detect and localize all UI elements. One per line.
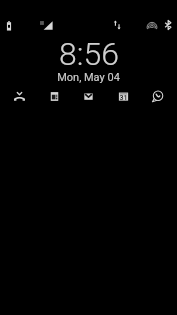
button[interactable]: WhatsApp — [152, 91, 163, 102]
staticText: Mon, May 04 — [57, 71, 120, 84]
button[interactable]: Hotspot — [144, 17, 160, 33]
button[interactable]: Missed call — [14, 91, 25, 102]
button[interactable]: 8:56 — [0, 35, 177, 85]
button[interactable]: News — [49, 91, 60, 102]
button[interactable]: Battery — [1, 17, 17, 33]
staticText: 31 — [119, 94, 128, 102]
staticText: 8:56 — [59, 35, 119, 73]
button[interactable]: Lock screen — [0, 0, 177, 315]
button[interactable]: Mobile signal — [38, 17, 55, 33]
button[interactable]: Email — [83, 91, 94, 102]
button[interactable]: Bluetooth — [160, 17, 176, 33]
button[interactable]: Calendar — [118, 91, 129, 102]
button[interactable]: Mobile data activity — [109, 17, 126, 33]
